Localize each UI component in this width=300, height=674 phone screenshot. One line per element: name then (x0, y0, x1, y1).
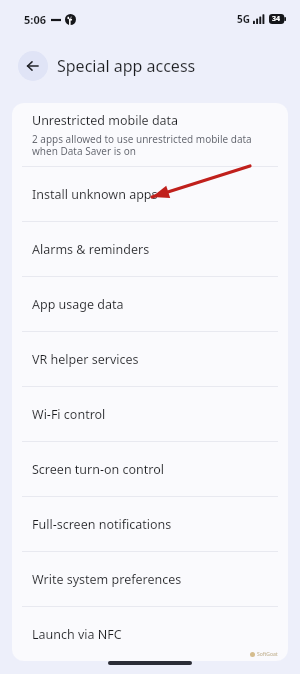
staticText: Unrestricted mobile data (32, 112, 179, 129)
button[interactable]: Wi-Fi control (22, 387, 278, 441)
staticText: Write system preferences (32, 571, 182, 588)
button[interactable]: Unrestricted mobile data (22, 103, 278, 166)
staticText: App usage data (32, 296, 124, 313)
staticText: 2 apps allowed to use unrestricted mobil… (32, 132, 272, 158)
staticText: 5:06 (24, 12, 46, 27)
staticText: SoftGoat (257, 651, 278, 658)
staticText: Full-screen notifications (32, 516, 172, 533)
button[interactable]: App usage data (22, 277, 278, 331)
staticText: Screen turn-on control (32, 461, 165, 478)
staticText: VR helper services (32, 351, 139, 368)
button[interactable]: Launch via NFC (22, 607, 278, 661)
button[interactable]: Screen turn-on control (22, 442, 278, 496)
staticText: Launch via NFC (32, 626, 122, 643)
staticText: 5G (237, 12, 250, 26)
staticText: Alarms & reminders (32, 241, 150, 258)
staticText: Special app access (57, 55, 196, 77)
button[interactable]: Back (18, 51, 48, 81)
staticText: Install unknown apps (32, 186, 158, 203)
button[interactable]: Write system preferences (22, 552, 278, 606)
staticText: 34 (272, 14, 281, 24)
staticText: Wi-Fi control (32, 406, 106, 423)
button[interactable]: VR helper services (22, 332, 278, 386)
button[interactable]: Full-screen notifications (22, 497, 278, 551)
button[interactable]: Alarms & reminders (22, 222, 278, 276)
button[interactable]: Install unknown apps (22, 167, 278, 221)
